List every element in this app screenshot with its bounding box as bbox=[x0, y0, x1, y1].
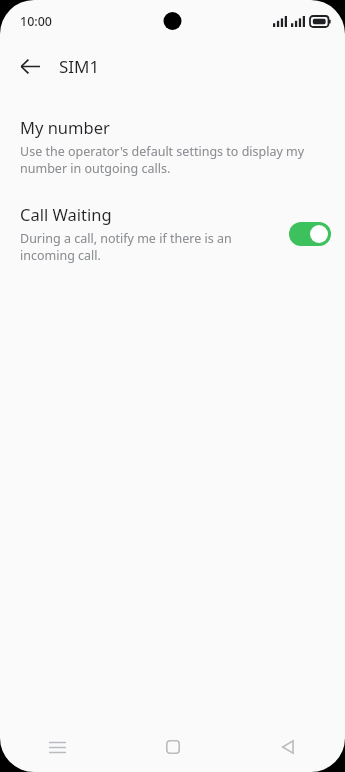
button[interactable]: Back bbox=[10, 46, 50, 86]
button[interactable]: Call Waiting bbox=[0, 201, 345, 266]
staticText: During a call, notify me if there is an … bbox=[20, 230, 267, 264]
staticText: Use the operator's default settings to d… bbox=[20, 143, 317, 177]
button[interactable]: My number bbox=[0, 114, 345, 179]
staticText: 10:00 bbox=[20, 13, 53, 30]
staticText: SIM1 bbox=[59, 55, 100, 78]
staticText: My number bbox=[20, 116, 110, 138]
staticText: Call Waiting bbox=[20, 203, 112, 225]
button[interactable]: Home bbox=[115, 722, 230, 772]
button[interactable]: Recent apps bbox=[0, 722, 115, 772]
button[interactable]: Back bbox=[230, 722, 345, 772]
button[interactable]: Call Waiting toggle bbox=[289, 222, 331, 246]
